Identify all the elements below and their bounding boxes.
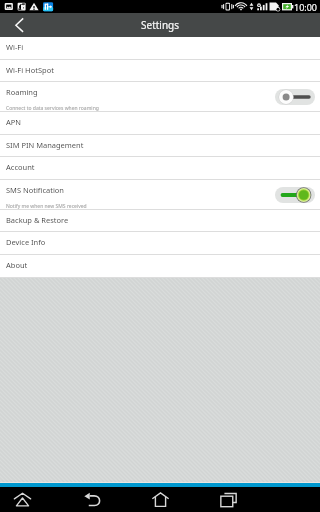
staticText: Backup & Restore <box>6 215 69 225</box>
staticText: Roaming <box>6 87 38 97</box>
button[interactable]: Backup & Restore <box>0 210 320 232</box>
staticText: Device Info <box>6 237 46 247</box>
staticText: SMS Notification <box>6 185 65 195</box>
button[interactable]: SMS Notification <box>0 180 320 210</box>
staticText: Settings <box>141 18 180 32</box>
button[interactable]: About <box>0 255 320 278</box>
button[interactable]: On <box>275 187 315 203</box>
button[interactable]: Home <box>139 487 181 512</box>
button[interactable]: Wi-Fi HotSpot <box>0 60 320 82</box>
staticText: 10:00 <box>294 1 318 13</box>
staticText: Wi-Fi HotSpot <box>6 65 54 75</box>
button[interactable]: SIM PIN Management <box>0 135 320 157</box>
button[interactable]: Device Info <box>0 232 320 255</box>
staticText: SIM PIN Management <box>6 140 84 150</box>
button[interactable]: Navigate up <box>0 13 26 37</box>
staticText: APN <box>6 117 22 127</box>
button[interactable]: Off <box>275 89 315 105</box>
staticText: Wi-Fi <box>6 42 24 52</box>
button[interactable]: Back <box>45 487 139 512</box>
staticText: About <box>6 260 28 270</box>
button[interactable]: APN <box>0 112 320 135</box>
staticText: Notify me when new SMS received <box>6 203 87 210</box>
staticText: Connect to data services when roaming <box>6 105 99 112</box>
staticText: Account <box>6 162 35 172</box>
button[interactable]: Account <box>0 157 320 180</box>
button[interactable]: Menu <box>0 487 45 512</box>
button[interactable]: Recent apps <box>181 487 276 512</box>
button[interactable]: Roaming <box>0 82 320 112</box>
button[interactable]: Wi-Fi <box>0 37 320 60</box>
